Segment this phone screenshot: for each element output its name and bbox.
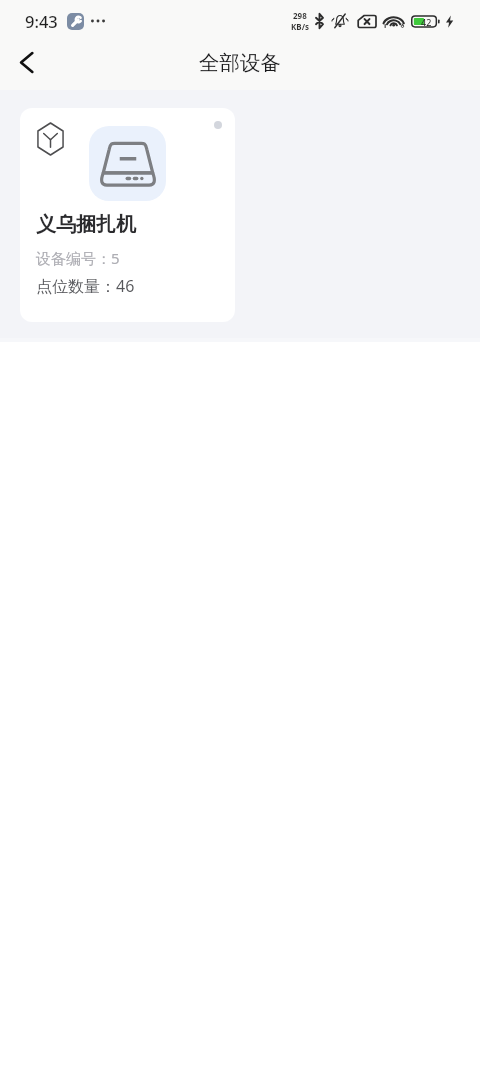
staticText: 点位数量：46: [36, 275, 135, 297]
staticText: 9:43: [25, 10, 58, 32]
staticText: KB/s: [291, 21, 309, 32]
button[interactable]: Back: [4, 40, 48, 84]
staticText: 全部设备: [199, 50, 281, 76]
staticText: 298: [293, 10, 307, 21]
staticText: 42: [421, 16, 432, 28]
staticText: 义乌捆扎机: [36, 212, 136, 237]
staticText: 设备编号：5: [36, 248, 120, 268]
button[interactable]: 义乌捆扎机: [20, 108, 235, 322]
